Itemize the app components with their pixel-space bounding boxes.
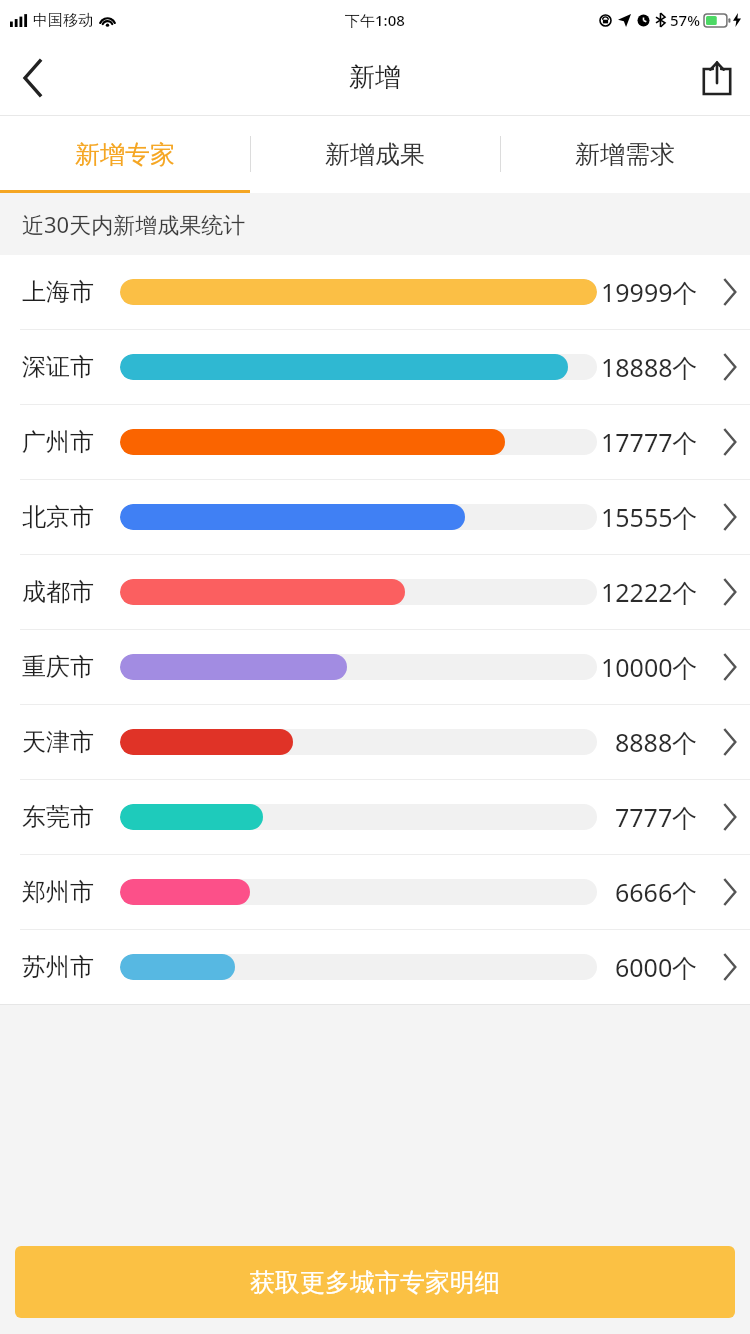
staticText: 北京市: [22, 502, 94, 532]
staticText: 10000个: [601, 650, 698, 684]
staticText: 中国移动: [33, 11, 93, 30]
button[interactable]: 返回: [0, 45, 66, 111]
staticText: 6000个: [615, 950, 698, 984]
button[interactable]: 深证市: [0, 330, 750, 404]
staticText: 郑州市: [22, 877, 94, 907]
button[interactable]: 郑州市: [0, 855, 750, 929]
staticText: 新增: [349, 61, 401, 94]
staticText: 重庆市: [22, 652, 94, 682]
button[interactable]: 成都市: [0, 555, 750, 629]
staticText: 7777个: [615, 800, 698, 834]
button[interactable]: 广州市: [0, 405, 750, 479]
button[interactable]: 新增需求: [500, 115, 750, 193]
staticText: 苏州市: [22, 952, 94, 982]
staticText: 15555个: [601, 500, 698, 534]
staticText: 成都市: [22, 577, 94, 607]
staticText: 18888个: [601, 350, 698, 384]
staticText: 深证市: [22, 352, 94, 382]
staticText: 新增需求: [575, 139, 675, 170]
button[interactable]: 上海市: [0, 255, 750, 329]
staticText: 57%: [670, 10, 700, 30]
staticText: 东莞市: [22, 802, 94, 832]
staticText: 12222个: [601, 575, 698, 609]
button[interactable]: 获取更多城市专家明细: [15, 1246, 735, 1318]
button[interactable]: 东莞市: [0, 780, 750, 854]
button[interactable]: 北京市: [0, 480, 750, 554]
button[interactable]: 新增成果: [250, 115, 500, 193]
staticText: 获取更多城市专家明细: [250, 1267, 500, 1298]
button[interactable]: 分享: [684, 45, 750, 111]
staticText: 天津市: [22, 727, 94, 757]
staticText: 新增专家: [75, 139, 175, 170]
staticText: 新增成果: [325, 139, 425, 170]
button[interactable]: 苏州市: [0, 930, 750, 1004]
staticText: 下午1:08: [345, 10, 405, 30]
staticText: 上海市: [22, 277, 94, 307]
button[interactable]: 重庆市: [0, 630, 750, 704]
button[interactable]: 天津市: [0, 705, 750, 779]
staticText: 6666个: [615, 875, 698, 909]
staticText: 17777个: [601, 425, 698, 459]
staticText: 19999个: [601, 275, 698, 309]
staticText: 广州市: [22, 427, 94, 457]
staticText: 近30天内新增成果统计: [22, 209, 246, 239]
button[interactable]: 新增专家: [0, 115, 250, 193]
staticText: 8888个: [615, 725, 698, 759]
